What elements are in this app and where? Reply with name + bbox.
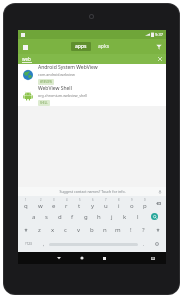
button[interactable]: n: [98, 223, 111, 237]
button[interactable]: k: [118, 210, 131, 223]
button[interactable]: x: [46, 223, 59, 237]
button[interactable]: Shift: [19, 223, 33, 237]
staticText: o: [130, 202, 134, 210]
staticText: i: [118, 202, 120, 210]
staticText: w: [38, 202, 43, 210]
staticText: Android System WebView: [38, 64, 98, 71]
staticText: 5: [79, 198, 81, 202]
staticText: apks: [98, 43, 110, 50]
button[interactable]: apps: [71, 42, 91, 51]
staticText: com.android.webview: [38, 72, 75, 77]
button[interactable]: d: [53, 210, 66, 223]
button[interactable]: s: [40, 210, 53, 223]
staticText: ,: [43, 241, 45, 247]
staticText: 6: [92, 198, 94, 202]
staticText: WebView Shell: [38, 85, 72, 92]
staticText: 1: [25, 198, 27, 202]
button[interactable]: !: [124, 223, 137, 237]
button[interactable]: 5: [73, 197, 86, 210]
button[interactable]: Backspace: [151, 197, 165, 210]
button[interactable]: apks: [94, 42, 114, 51]
staticText: 7: [105, 198, 107, 202]
staticText: 2: [40, 198, 42, 202]
button[interactable]: Settings: [149, 237, 165, 251]
button[interactable]: ,: [38, 237, 49, 251]
button[interactable]: Filter: [154, 42, 163, 51]
button[interactable]: ?: [137, 223, 150, 237]
staticText: d: [58, 213, 62, 221]
button[interactable]: 3: [47, 197, 60, 210]
staticText: Suggest contact names? Touch for info.: [59, 189, 126, 194]
staticText: 9:37: [155, 32, 163, 37]
staticText: v: [77, 226, 81, 234]
staticText: y: [91, 202, 95, 210]
button[interactable]: 1: [19, 197, 33, 210]
button[interactable]: m: [111, 223, 124, 237]
button[interactable]: Switch keyboard: [141, 252, 164, 264]
button[interactable]: web: [18, 54, 166, 64]
button[interactable]: Android System WebView: [18, 64, 166, 85]
button[interactable]: Navigation menu: [21, 43, 29, 51]
staticText: 9: [131, 198, 133, 202]
staticText: x: [51, 226, 55, 234]
button[interactable]: j: [105, 210, 118, 223]
staticText: 4: [66, 198, 68, 202]
button[interactable]: Clear search: [157, 56, 163, 62]
staticText: t: [78, 202, 81, 210]
button[interactable]: 7: [99, 197, 112, 210]
button[interactable]: Space: [49, 239, 138, 249]
button[interactable]: 6: [86, 197, 99, 210]
staticText: 3: [53, 198, 55, 202]
staticText: l: [137, 213, 139, 221]
button[interactable]: Suggest contact names? Touch for info.: [18, 187, 166, 196]
button[interactable]: f: [66, 210, 79, 223]
staticText: SHELL: [40, 101, 48, 105]
staticText: s: [45, 213, 48, 221]
staticText: z: [38, 226, 41, 234]
staticText: apps: [75, 43, 87, 50]
staticText: k: [123, 213, 127, 221]
staticText: p: [143, 202, 147, 210]
staticText: q: [24, 202, 28, 210]
staticText: 0: [144, 198, 146, 202]
button[interactable]: 8: [112, 197, 125, 210]
staticText: c: [64, 226, 67, 234]
staticText: h: [97, 213, 101, 221]
button[interactable]: 4: [60, 197, 73, 210]
button[interactable]: 2: [33, 197, 47, 210]
button[interactable]: v: [72, 223, 85, 237]
staticText: org.chromium.webview_shell: [38, 93, 88, 98]
button[interactable]: WebView Shell: [18, 85, 166, 106]
staticText: ?: [142, 226, 145, 234]
button[interactable]: Search: [144, 210, 165, 223]
button[interactable]: Home: [70, 252, 93, 264]
staticText: j: [111, 213, 113, 221]
button[interactable]: z: [33, 223, 46, 237]
button[interactable]: g: [79, 210, 92, 223]
staticText: b: [90, 226, 94, 234]
staticText: !: [130, 226, 132, 234]
staticText: WEBVIEW: [40, 80, 52, 84]
button[interactable]: 0: [138, 197, 151, 210]
staticText: .: [143, 241, 145, 247]
staticText: m: [115, 226, 121, 234]
button[interactable]: a: [27, 210, 40, 223]
button[interactable]: h: [92, 210, 105, 223]
staticText: e: [52, 202, 56, 210]
staticText: web: [22, 56, 31, 62]
button[interactable]: Shift: [150, 223, 165, 237]
staticText: r: [65, 202, 68, 210]
button[interactable]: c: [59, 223, 72, 237]
button[interactable]: 9: [125, 197, 138, 210]
staticText: f: [71, 213, 74, 221]
button[interactable]: Back: [47, 252, 70, 264]
button[interactable]: ?123: [19, 237, 38, 251]
button[interactable]: Recent apps: [93, 252, 116, 264]
staticText: n: [103, 226, 107, 234]
staticText: ?123: [25, 242, 32, 246]
button[interactable]: Voice input: [156, 188, 163, 195]
button[interactable]: b: [85, 223, 98, 237]
staticText: u: [104, 202, 108, 210]
button[interactable]: l: [131, 210, 144, 223]
